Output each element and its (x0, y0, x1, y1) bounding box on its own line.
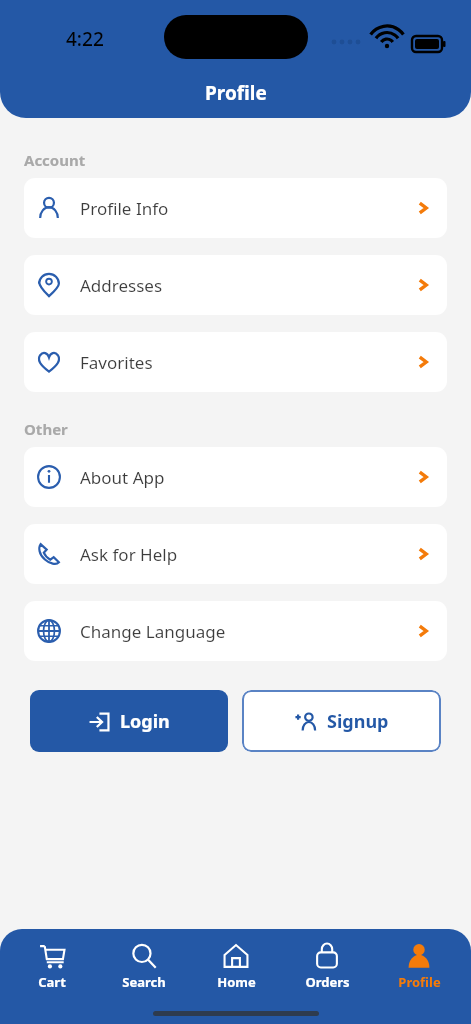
staticText: 4:22 (66, 26, 104, 52)
staticText: Cart (38, 973, 66, 991)
other: Search (131, 943, 157, 969)
staticText: Profile Info (80, 197, 169, 220)
button[interactable]: Ask for Help (24, 524, 447, 584)
other: Orders (314, 943, 340, 969)
staticText: Orders (305, 973, 350, 991)
staticText: Search (122, 973, 166, 991)
staticText: Signup (327, 709, 389, 734)
staticText: Account (24, 150, 86, 170)
button[interactable]: Change Language (24, 601, 447, 661)
staticText: Other (24, 419, 68, 439)
button[interactable]: Cart (12, 943, 92, 991)
staticText: Login (120, 709, 170, 734)
button[interactable]: Profile Info (24, 178, 447, 238)
button[interactable]: Profile (379, 943, 459, 991)
button[interactable]: Addresses (24, 255, 447, 315)
button[interactable]: Home (196, 943, 276, 991)
staticText: Addresses (80, 274, 163, 297)
other: Profile (406, 943, 432, 969)
staticText: Favorites (80, 351, 153, 374)
other: Cart (39, 943, 65, 969)
button[interactable]: Orders (287, 943, 367, 991)
staticText: Ask for Help (80, 543, 178, 566)
button[interactable]: Favorites (24, 332, 447, 392)
button[interactable]: Login (30, 690, 228, 752)
staticText: About App (80, 466, 165, 489)
other: Home (223, 943, 249, 969)
button[interactable]: Signup (242, 690, 441, 752)
staticText: Profile (205, 80, 267, 106)
button[interactable]: Search (104, 943, 184, 991)
button[interactable]: About App (24, 447, 447, 507)
staticText: Home (217, 973, 256, 991)
staticText: Change Language (80, 620, 226, 643)
staticText: Profile (398, 973, 441, 991)
